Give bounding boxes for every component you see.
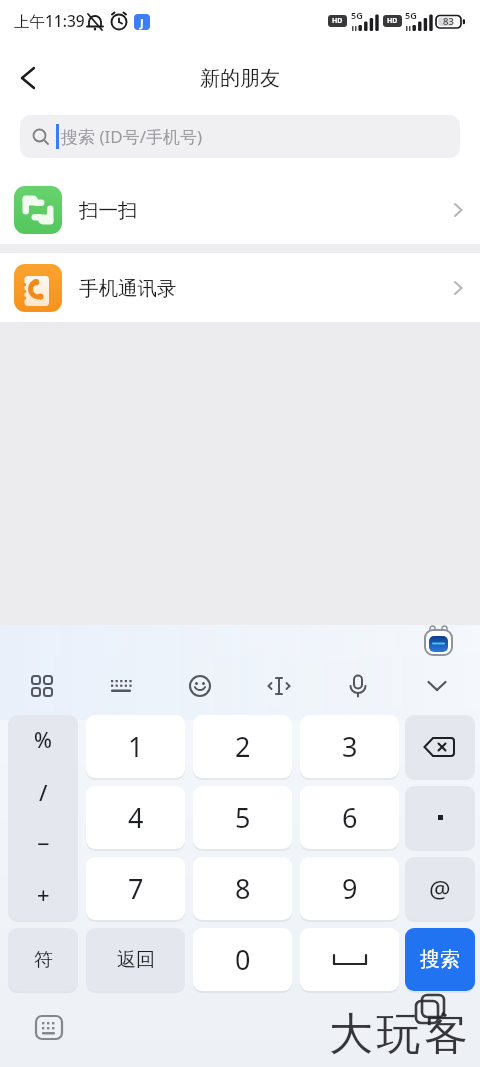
staticText: + xyxy=(37,879,50,909)
button[interactable]: 9 xyxy=(300,857,399,920)
button[interactable]: 3 xyxy=(300,715,399,778)
staticText: 5G xyxy=(351,9,363,21)
staticText: 6 xyxy=(342,799,358,836)
staticText: 搜索 (ID号/手机号) xyxy=(61,125,203,148)
staticText: 5 xyxy=(235,799,251,836)
staticText: 9 xyxy=(342,870,358,907)
button[interactable] xyxy=(405,786,475,849)
staticText: / xyxy=(39,777,48,807)
button[interactable] xyxy=(2,58,46,98)
button[interactable]: 0 xyxy=(193,928,292,991)
button[interactable] xyxy=(334,662,382,710)
button[interactable]: 2 xyxy=(193,715,292,778)
button[interactable] xyxy=(176,662,224,710)
button[interactable]: 7 xyxy=(86,857,185,920)
staticText: − xyxy=(37,828,50,858)
staticText: @ xyxy=(429,872,451,905)
button[interactable]: 搜索 (ID号/手机号) xyxy=(20,115,460,158)
staticText: % xyxy=(34,726,52,755)
button[interactable] xyxy=(413,662,461,710)
button[interactable]: 1 xyxy=(86,715,185,778)
staticText: 手机通讯录 xyxy=(79,276,177,301)
button[interactable] xyxy=(255,662,303,710)
button[interactable]: 扫一扫 xyxy=(0,175,480,244)
staticText: 5G xyxy=(405,9,417,21)
button[interactable]: 5 xyxy=(193,786,292,849)
staticText: 大玩客 xyxy=(329,1007,472,1062)
button[interactable]: 手机通讯录 xyxy=(0,253,480,322)
staticText: 3 xyxy=(342,728,358,765)
staticText: 扫一扫 xyxy=(79,198,138,223)
staticText: 83 xyxy=(443,15,454,28)
button[interactable] xyxy=(97,662,145,710)
button[interactable]: 4 xyxy=(86,786,185,849)
button[interactable]: 搜索 xyxy=(405,928,475,991)
button[interactable] xyxy=(35,1015,63,1040)
button[interactable] xyxy=(424,626,454,656)
staticText: 0 xyxy=(235,941,251,978)
button[interactable]: 6 xyxy=(300,786,399,849)
button[interactable]: @ xyxy=(405,857,475,920)
staticText: 2 xyxy=(235,728,251,765)
staticText: 1 xyxy=(128,728,144,765)
button[interactable]: % xyxy=(8,715,78,920)
staticText: 返回 xyxy=(117,948,155,972)
staticText: 符 xyxy=(34,948,53,972)
staticText: HD xyxy=(332,16,343,26)
button[interactable] xyxy=(300,928,399,991)
staticText: 4 xyxy=(128,799,144,836)
button[interactable]: 返回 xyxy=(86,928,185,991)
staticText: 7 xyxy=(128,870,144,907)
button[interactable] xyxy=(18,662,66,710)
staticText: HD xyxy=(387,16,398,26)
button[interactable]: 符 xyxy=(8,928,78,991)
staticText: 新的朋友 xyxy=(200,66,280,91)
button[interactable] xyxy=(405,715,475,778)
button[interactable]: 8 xyxy=(193,857,292,920)
staticText: J xyxy=(140,15,144,30)
staticText: 搜索 xyxy=(420,947,460,972)
staticText: 上午11:39 xyxy=(14,10,85,31)
staticText: 8 xyxy=(235,870,251,907)
